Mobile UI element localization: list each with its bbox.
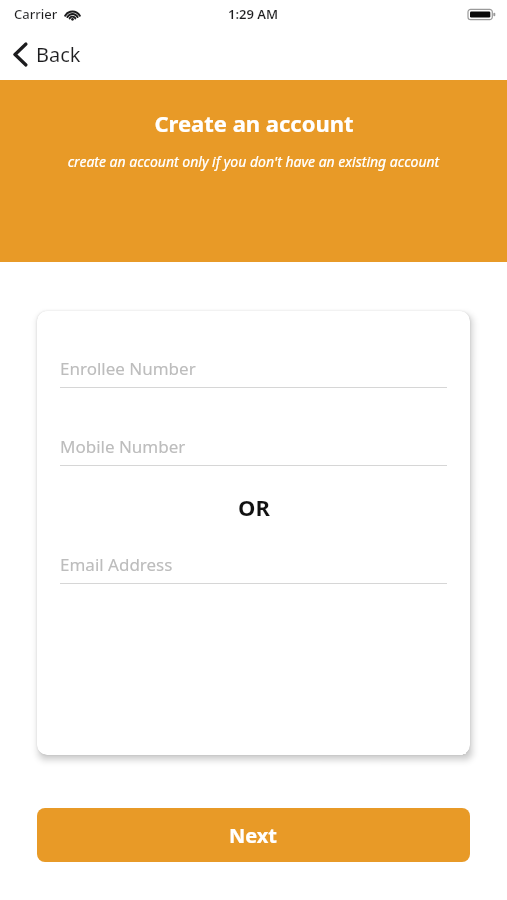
staticText: Enrollee Number (60, 357, 196, 380)
button[interactable]: Mobile Number (60, 435, 447, 466)
staticText: Next (229, 822, 278, 849)
button[interactable]: Back (0, 35, 95, 74)
staticText: OR (238, 492, 270, 522)
staticText: Back (36, 41, 81, 68)
button[interactable]: Next (37, 808, 470, 862)
staticText: Email Address (60, 553, 173, 576)
staticText: create an account only if you don't have… (8, 152, 499, 171)
staticText: Carrier (14, 5, 58, 23)
staticText: Create an account (154, 108, 354, 138)
button[interactable]: Email Address (60, 553, 447, 584)
button[interactable]: Enrollee Number (60, 357, 447, 388)
staticText: 1:29 AM (228, 5, 279, 23)
staticText: Mobile Number (60, 435, 186, 458)
